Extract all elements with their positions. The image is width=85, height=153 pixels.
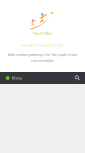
button[interactable]: Menu: [0, 72, 26, 84]
staticText: Menu: [12, 75, 22, 81]
staticText: communities: [31, 58, 54, 63]
button[interactable]: Search: [75, 72, 85, 84]
staticText: information for young people: [21, 44, 64, 47]
staticText: Information pathways for the youth in ou…: [7, 52, 77, 57]
staticText: YouthNet: [33, 30, 52, 36]
